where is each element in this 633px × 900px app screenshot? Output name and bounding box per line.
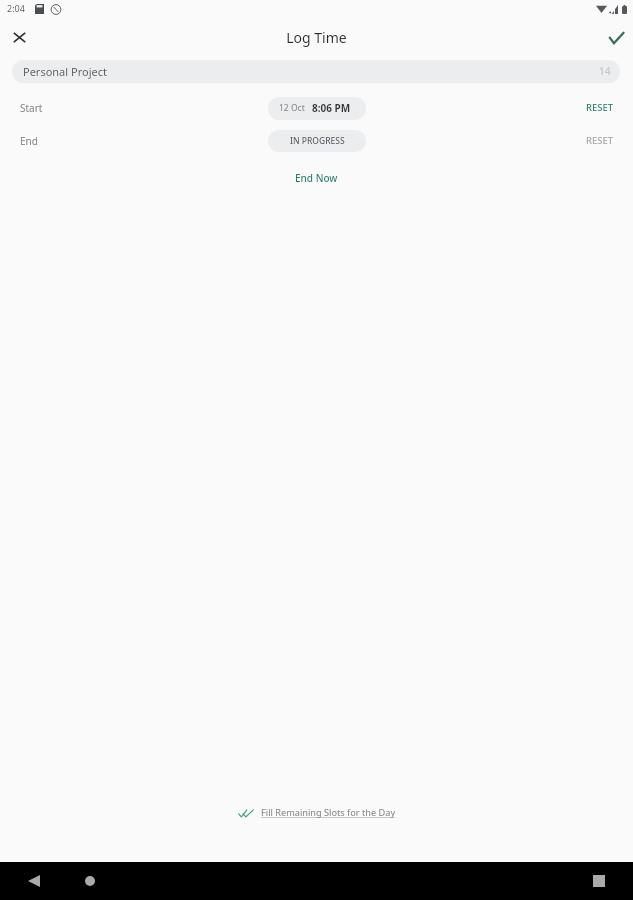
staticText: 2:04 xyxy=(7,2,25,14)
staticText: 8:06 PM xyxy=(312,101,351,115)
staticText: IN PROGRESS xyxy=(290,135,345,147)
staticText: 14 xyxy=(599,64,611,78)
staticText: End xyxy=(20,134,38,148)
button[interactable]: RESET xyxy=(581,99,619,115)
button[interactable]: Personal Project xyxy=(12,60,620,83)
button[interactable]: Home xyxy=(72,862,108,900)
button[interactable]: Save xyxy=(603,25,629,51)
staticText: End Now xyxy=(295,171,338,185)
staticText: RESET xyxy=(586,101,614,114)
button[interactable]: Fill Remaining Slots for the Day xyxy=(238,802,396,822)
button[interactable]: IN PROGRESS xyxy=(268,130,366,152)
staticText: Start xyxy=(20,101,43,115)
button[interactable]: End Now xyxy=(288,165,345,186)
button[interactable]: 12 Oct xyxy=(268,97,366,120)
button[interactable]: Back xyxy=(16,862,52,900)
staticText: RESET xyxy=(586,134,614,147)
staticText: Log Time xyxy=(0,28,633,47)
button[interactable]: RESET xyxy=(581,132,619,148)
staticText: Fill Remaining Slots for the Day xyxy=(261,806,396,819)
button[interactable]: Close xyxy=(6,24,32,50)
staticText: 12 Oct xyxy=(279,102,305,114)
button[interactable]: Recents xyxy=(581,862,617,900)
staticText: Personal Project xyxy=(23,64,107,79)
